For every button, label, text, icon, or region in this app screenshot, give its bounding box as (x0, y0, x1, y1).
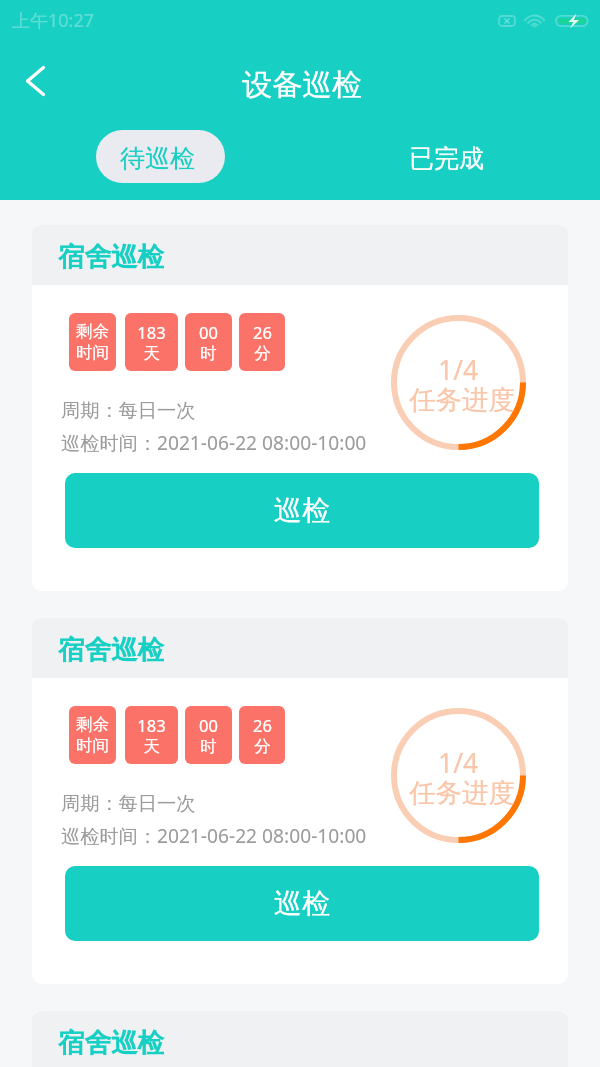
staticText: 时间 (76, 342, 109, 363)
staticText: 上午10:27 (12, 8, 95, 33)
staticText: 时 (200, 736, 217, 757)
staticText: 剩余 (76, 321, 109, 342)
button[interactable]: 巡检 (65, 866, 539, 941)
staticText: 1/4 (438, 352, 479, 388)
staticText: 巡检 (274, 493, 330, 528)
button[interactable]: 宿舍巡检 (32, 618, 568, 984)
staticText: 00 (199, 321, 218, 343)
staticText: 宿舍巡检 (58, 1026, 164, 1059)
staticText: 巡检时间：2021-06-22 08:00-10:00 (61, 429, 367, 455)
button[interactable]: 待巡检 (96, 130, 225, 183)
staticText: 00 (199, 714, 218, 736)
button[interactable]: 巡检 (65, 473, 539, 548)
staticText: 1/4 (438, 745, 479, 781)
staticText: 剩余 (76, 714, 109, 735)
staticText: 分 (254, 343, 271, 364)
staticText: 周期：每日一次 (61, 399, 196, 423)
staticText: 已完成 (409, 143, 484, 174)
staticText: 183 (137, 714, 166, 736)
staticText: 天 (143, 736, 160, 757)
staticText: 天 (143, 343, 160, 364)
staticText: 宿舍巡检 (58, 240, 164, 273)
staticText: 巡检 (274, 886, 330, 921)
staticText: 任务进度 (409, 776, 515, 809)
staticText: 巡检时间：2021-06-22 08:00-10:00 (61, 822, 367, 848)
button[interactable]: Back (13, 58, 58, 103)
staticText: 时 (200, 343, 217, 364)
staticText: 宿舍巡检 (58, 633, 164, 666)
staticText: 183 (137, 321, 166, 343)
staticText: 26 (253, 714, 272, 736)
staticText: 待巡检 (120, 143, 195, 174)
staticText: 任务进度 (409, 383, 515, 416)
staticText: 设备巡检 (242, 66, 362, 104)
button[interactable]: 宿舍巡检 (32, 225, 568, 591)
staticText: 时间 (76, 735, 109, 756)
button[interactable]: 已完成 (382, 132, 510, 184)
button[interactable]: 宿舍巡检 (32, 1011, 568, 1067)
staticText: 周期：每日一次 (61, 792, 196, 816)
staticText: 26 (253, 321, 272, 343)
staticText: 分 (254, 736, 271, 757)
